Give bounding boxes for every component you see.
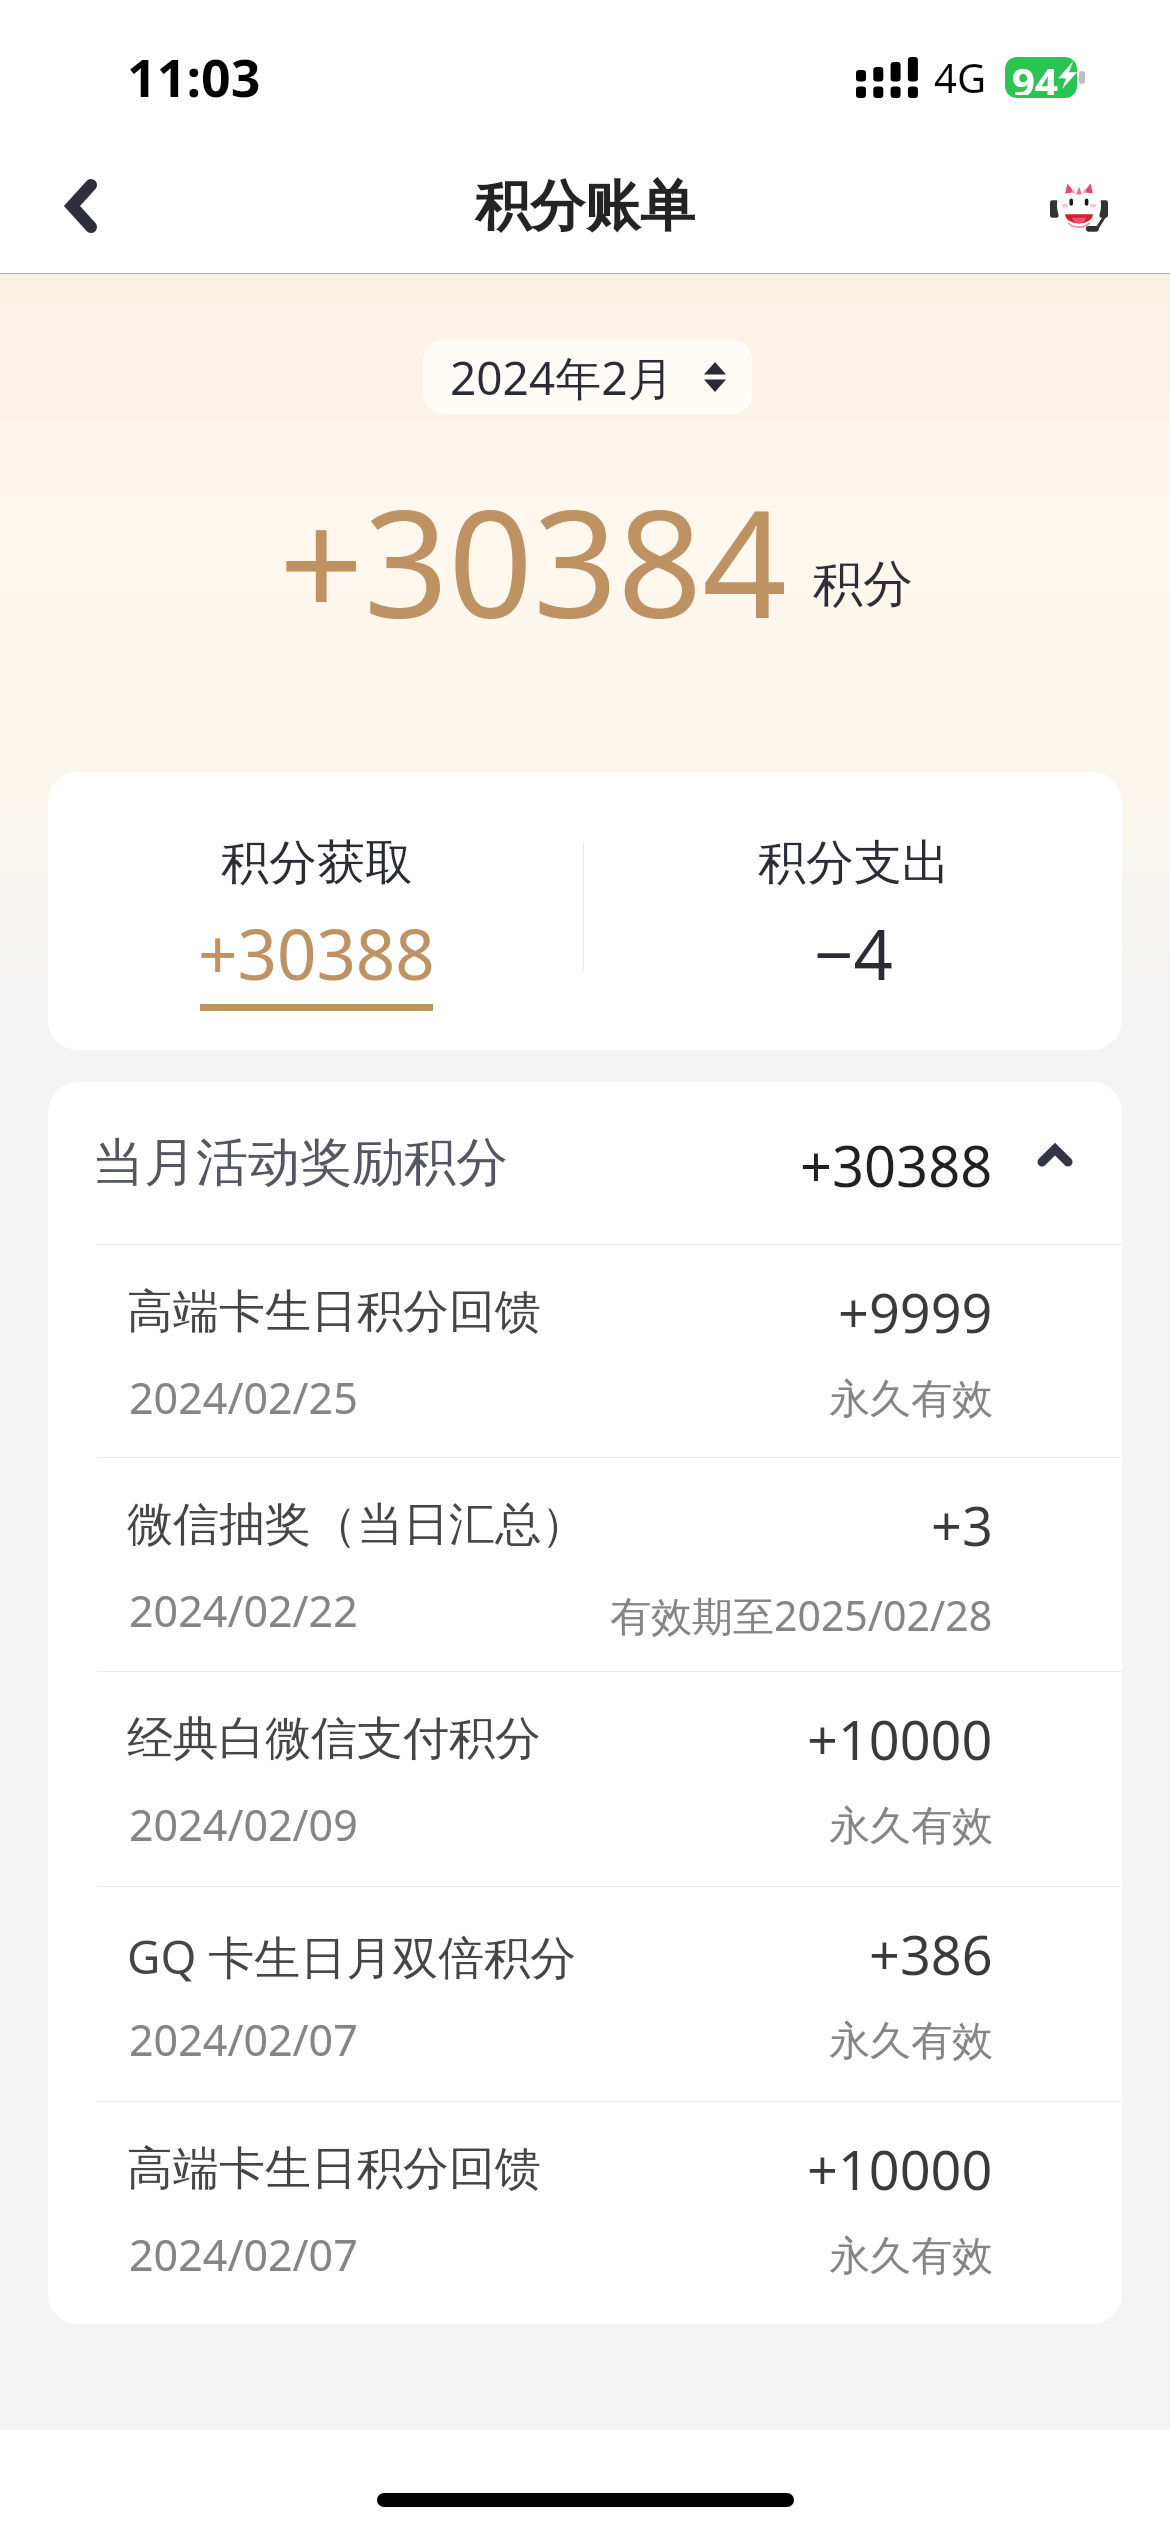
staticText: 有效期至2025/02/28	[610, 1587, 993, 1643]
staticText: 永久有效	[829, 2016, 993, 2068]
button[interactable]: 经典白微信支付积分	[48, 1672, 1122, 1886]
button[interactable]: Back	[25, 150, 137, 262]
staticText: 当月活动奖励积分	[92, 1130, 508, 1196]
staticText: 永久有效	[829, 1801, 993, 1853]
staticText: −4	[814, 906, 893, 1000]
button[interactable]: 当月活动奖励积分	[48, 1082, 1122, 1244]
staticText: 积分支出	[758, 833, 950, 893]
staticText: +10000	[807, 1702, 993, 1776]
staticText: 经典白微信支付积分	[127, 1710, 541, 1768]
staticText: +30384	[279, 460, 787, 660]
staticText: 94	[1012, 57, 1058, 95]
staticText: 高端卡生日积分回馈	[127, 1283, 541, 1341]
staticText: 积分账单	[475, 172, 695, 241]
staticText: 积分	[813, 553, 913, 616]
staticText: +10000	[807, 2132, 993, 2206]
staticText: 2024/02/07	[129, 2010, 358, 2069]
staticText: 2024/02/22	[129, 1581, 358, 1640]
staticText: 2024/02/25	[129, 1368, 358, 1427]
button[interactable]: 高端卡生日积分回馈	[48, 2102, 1122, 2324]
staticText: 11:03	[127, 41, 261, 112]
staticText: +9999	[838, 1275, 993, 1349]
staticText: 2024年2月	[450, 346, 674, 409]
staticText: GQ 卡生日月双倍积分	[127, 1925, 577, 1988]
button[interactable]: 微信抽奖（当日汇总）	[48, 1458, 1122, 1671]
staticText: +386	[869, 1917, 993, 1991]
staticText: 永久有效	[829, 2231, 993, 2283]
staticText: 高端卡生日积分回馈	[127, 2140, 541, 2198]
button[interactable]: GQ 卡生日月双倍积分	[48, 1887, 1122, 2101]
button[interactable]: 高端卡生日积分回馈	[48, 1245, 1122, 1457]
staticText: 永久有效	[829, 1374, 993, 1426]
staticText: 积分获取	[221, 833, 413, 893]
staticText: +30388	[198, 906, 435, 1000]
button[interactable]: 2024年2月	[423, 340, 752, 414]
staticText: 微信抽奖（当日汇总）	[127, 1496, 587, 1554]
staticText: +3	[931, 1488, 993, 1562]
staticText: +30388	[800, 1127, 993, 1203]
button[interactable]: Customer service	[1048, 174, 1110, 236]
staticText: 2024/02/07	[129, 2225, 358, 2284]
staticText: 2024/02/09	[129, 1795, 358, 1854]
staticText: 4G	[934, 50, 986, 104]
